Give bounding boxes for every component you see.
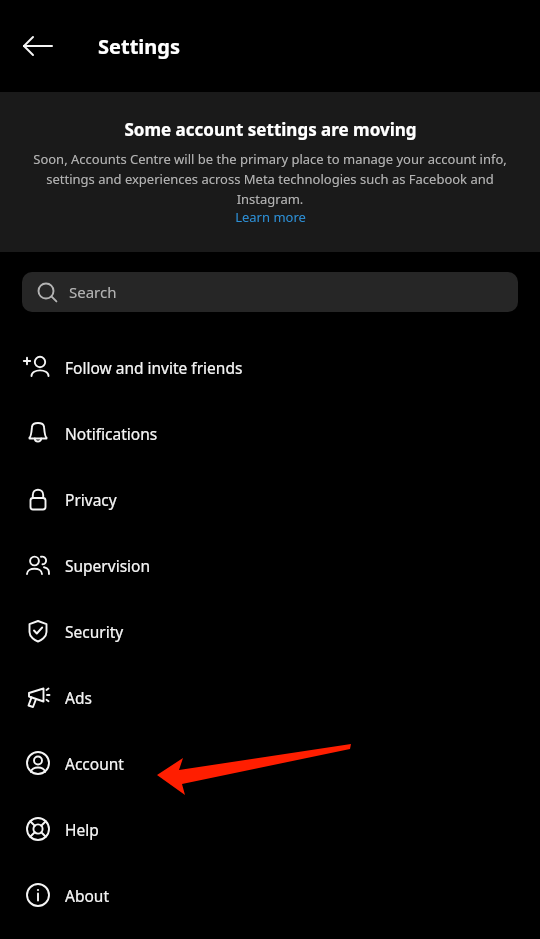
button[interactable]: About bbox=[0, 862, 540, 928]
button[interactable]: Notifications bbox=[0, 400, 540, 466]
button[interactable]: Follow and invite friends bbox=[0, 334, 540, 400]
staticText: Account bbox=[65, 753, 124, 774]
staticText: Soon, Accounts Centre will be the primar… bbox=[24, 150, 516, 208]
button[interactable]: Privacy bbox=[0, 466, 540, 532]
staticText: Settings bbox=[98, 33, 180, 60]
button[interactable]: Learn more bbox=[235, 208, 306, 226]
staticText: Supervision bbox=[65, 555, 151, 576]
staticText: Notifications bbox=[65, 423, 158, 444]
button[interactable]: Help bbox=[0, 796, 540, 862]
staticText: Search bbox=[69, 282, 117, 302]
staticText: Learn more bbox=[235, 208, 306, 226]
button[interactable]: Supervision bbox=[0, 532, 540, 598]
staticText: Ads bbox=[65, 687, 92, 708]
staticText: Some account settings are moving bbox=[124, 118, 417, 141]
button[interactable]: Search bbox=[22, 272, 518, 312]
button[interactable]: Ads bbox=[0, 664, 540, 730]
button[interactable]: Security bbox=[0, 598, 540, 664]
button[interactable]: Account bbox=[0, 730, 540, 796]
button[interactable]: Back bbox=[14, 22, 62, 70]
staticText: Privacy bbox=[65, 489, 117, 510]
staticText: Security bbox=[65, 621, 124, 642]
staticText: About bbox=[65, 885, 109, 906]
staticText: Follow and invite friends bbox=[65, 357, 243, 378]
staticText: Help bbox=[65, 819, 99, 840]
